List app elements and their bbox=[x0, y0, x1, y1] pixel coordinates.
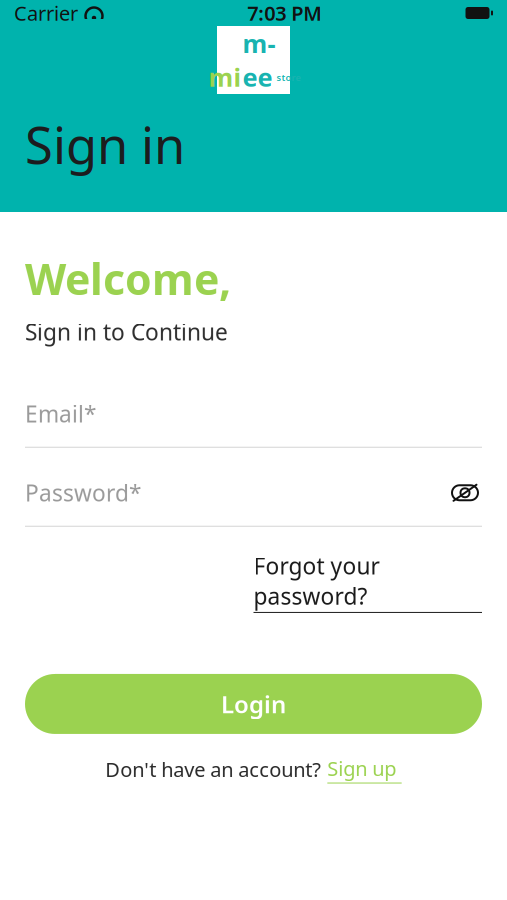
staticText: Login bbox=[221, 688, 286, 720]
staticText: store bbox=[276, 71, 300, 84]
button[interactable]: Forgot your password? bbox=[253, 547, 482, 617]
staticText: Sign up bbox=[327, 755, 396, 782]
button[interactable]: Show password bbox=[448, 478, 482, 508]
staticText: Sign in bbox=[25, 111, 185, 178]
staticText: Don't have an account? bbox=[105, 756, 321, 783]
staticText: Carrier bbox=[14, 0, 78, 26]
staticText: Sign in to Continue bbox=[25, 317, 228, 347]
staticText: Password* bbox=[25, 478, 141, 508]
staticText: 7:03 PM bbox=[247, 0, 322, 26]
button[interactable]: Sign up bbox=[327, 752, 402, 787]
staticText: Forgot your password? bbox=[253, 551, 379, 611]
staticText: Email* bbox=[25, 399, 96, 429]
staticText: mee bbox=[242, 26, 275, 94]
staticText: mi bbox=[208, 60, 241, 94]
button[interactable]: Login bbox=[25, 674, 482, 734]
staticText: Welcome, bbox=[25, 250, 231, 307]
